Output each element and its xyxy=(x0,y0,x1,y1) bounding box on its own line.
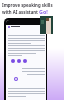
button[interactable]: Play xyxy=(14,77,18,81)
button[interactable]: Avatar xyxy=(23,59,27,63)
button[interactable]: Avatar xyxy=(11,59,15,63)
staticText: Go! xyxy=(39,8,48,15)
button[interactable]: Avatar xyxy=(4,18,47,100)
staticText: with AI assistant xyxy=(2,9,38,15)
staticText: Improve speaking skills xyxy=(2,2,53,8)
button[interactable]: Avatar xyxy=(17,59,21,63)
